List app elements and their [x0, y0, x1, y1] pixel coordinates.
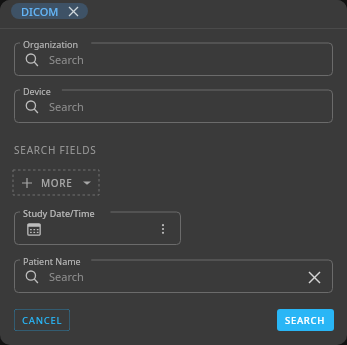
button[interactable]: CANCEL: [14, 309, 70, 331]
button[interactable]: MORE: [13, 170, 99, 195]
staticText: Search: [49, 99, 84, 114]
button[interactable]: Pick date: [25, 220, 43, 238]
other: Remove DICOM filter: [65, 3, 81, 19]
staticText: Organization: [23, 38, 78, 50]
button[interactable]: SEARCH: [277, 309, 334, 331]
staticText: Search: [49, 269, 84, 284]
button[interactable]: Device: [14, 85, 333, 123]
staticText: SEARCH FIELDS: [14, 143, 97, 157]
staticText: Search: [49, 52, 84, 67]
staticText: Study Date/Time: [23, 207, 95, 219]
button[interactable]: Study Date/Time: [14, 207, 181, 245]
button[interactable]: Patient Name: [14, 255, 333, 293]
button[interactable]: DICOM: [11, 3, 88, 19]
staticText: CANCEL: [22, 314, 63, 327]
button[interactable]: Clear text: [305, 268, 323, 286]
button[interactable]: More options: [154, 220, 172, 238]
staticText: Patient Name: [23, 255, 81, 267]
staticText: DICOM: [21, 4, 59, 19]
button[interactable]: Organization: [14, 38, 333, 76]
staticText: Device: [23, 85, 51, 97]
staticText: MORE: [41, 176, 73, 190]
staticText: SEARCH: [285, 314, 326, 327]
